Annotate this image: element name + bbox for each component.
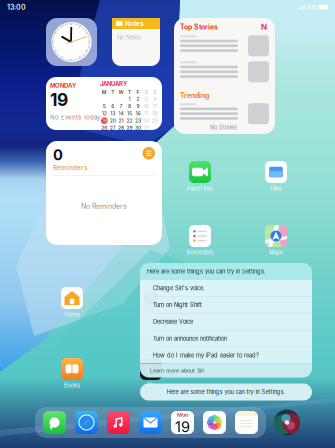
staticText: S	[145, 89, 148, 95]
button[interactable]: Music	[107, 411, 130, 434]
staticText: 13	[110, 110, 115, 116]
button[interactable]: Notes	[112, 18, 160, 66]
staticText: 19	[102, 117, 107, 124]
staticText: JANUARY	[100, 80, 127, 87]
staticText: 30	[135, 125, 141, 131]
button[interactable]: Books	[49, 358, 95, 389]
staticText: 23	[135, 117, 141, 124]
button[interactable]: Clock	[46, 18, 97, 66]
staticText: No Events Today	[50, 114, 100, 121]
staticText: No Notes	[117, 34, 141, 41]
button[interactable]: Turn on announce notification	[140, 330, 312, 347]
staticText: T	[128, 89, 131, 95]
staticText: 28	[118, 125, 124, 131]
staticText: 19	[50, 89, 68, 110]
staticText: 26	[101, 125, 107, 131]
staticText: M	[102, 89, 107, 95]
button[interactable]	[128, 358, 174, 389]
staticText: 18	[152, 110, 157, 116]
staticText: 19	[175, 418, 190, 436]
staticText: No Stories	[210, 124, 237, 131]
staticText: 8	[128, 103, 131, 109]
staticText: Here are some things you can try in Sett…	[166, 388, 285, 395]
button[interactable]: Calendar	[46, 77, 162, 130]
staticText: Books	[64, 382, 80, 389]
staticText: 16	[135, 110, 140, 116]
button[interactable]: Photos	[203, 411, 226, 434]
staticText: F	[136, 89, 139, 95]
button[interactable]: FaceTime	[177, 161, 223, 192]
staticText: 5G	[307, 3, 316, 11]
staticText: 7	[120, 103, 123, 109]
staticText: Top Stories	[180, 23, 218, 31]
staticText: 17	[144, 110, 149, 116]
staticText: 13:00	[7, 3, 26, 11]
staticText: Trending	[180, 91, 209, 100]
button[interactable]: News	[174, 18, 275, 134]
staticText: 24	[143, 117, 149, 124]
staticText: 3	[145, 96, 148, 102]
staticText: Turn on Night Shift	[153, 301, 202, 308]
staticText: T	[111, 89, 114, 95]
button[interactable]: Files	[253, 161, 299, 192]
staticText: Here are some things you can try in Sett…	[147, 268, 266, 275]
staticText: 22	[126, 117, 132, 124]
staticText: Learn more about Siri	[150, 367, 204, 374]
button[interactable]: How do I make my iPad easier to read?	[140, 347, 312, 363]
staticText: Turn on announce notification	[153, 335, 227, 342]
staticText: tv	[146, 362, 156, 375]
staticText: 27	[110, 125, 116, 131]
staticText: Home	[64, 311, 79, 318]
staticText: N	[261, 22, 267, 32]
staticText: 21	[119, 117, 124, 124]
button[interactable]: Mail	[139, 411, 162, 434]
staticText: 12	[102, 110, 107, 116]
staticText: S	[153, 89, 156, 95]
button[interactable]: Reminders	[177, 225, 223, 256]
staticText: Decrease Voice	[153, 318, 193, 325]
staticText: 31	[144, 125, 149, 131]
staticText: 5	[103, 103, 106, 109]
staticText: 20	[110, 117, 116, 124]
staticText: Notes	[125, 19, 144, 28]
staticText: 1	[128, 96, 130, 102]
staticText: 29	[126, 125, 132, 131]
button[interactable]: Here are some things you can try in Sett…	[140, 383, 312, 400]
button[interactable]: Turn on Night Shift	[140, 297, 312, 314]
staticText: 14	[119, 110, 124, 116]
staticText: How do I make my iPad easier to read?	[153, 352, 259, 359]
button[interactable]: Calendar	[171, 411, 194, 434]
staticText: Reminders	[186, 249, 213, 256]
staticText: Files	[270, 185, 281, 192]
staticText: 10	[144, 103, 149, 109]
button[interactable]: Camera	[128, 287, 174, 318]
button[interactable]: Messages	[43, 411, 66, 434]
staticText: 4	[153, 96, 156, 102]
staticText: 9	[136, 103, 139, 109]
staticText: No Reminders	[81, 202, 127, 210]
staticText: Change Siri's voice.	[153, 285, 205, 292]
button[interactable]: Maps	[253, 225, 299, 256]
staticText: 6	[111, 103, 114, 109]
button[interactable]: Decrease Voice	[140, 314, 312, 330]
button[interactable]	[140, 363, 312, 377]
staticText: 2	[136, 96, 139, 102]
staticText: 25	[152, 117, 158, 124]
staticText: MONDAY	[50, 82, 76, 89]
staticText: 15	[127, 110, 132, 116]
staticText: Mon	[177, 412, 188, 418]
staticText: Maps	[269, 249, 283, 256]
button[interactable]: Siri	[274, 409, 300, 435]
staticText: Reminders	[53, 164, 88, 171]
button[interactable]: Safari	[75, 411, 98, 434]
button[interactable]: Home	[49, 287, 95, 318]
staticText: FaceTime	[187, 185, 212, 192]
staticText: W	[119, 89, 124, 95]
button[interactable]: Reminders	[46, 141, 162, 245]
button[interactable]: Notes	[235, 411, 258, 434]
staticText: 0	[53, 146, 63, 164]
staticText: TV	[147, 382, 155, 389]
staticText: 11	[153, 103, 157, 109]
button[interactable]: Change Siri's voice.	[140, 280, 312, 297]
